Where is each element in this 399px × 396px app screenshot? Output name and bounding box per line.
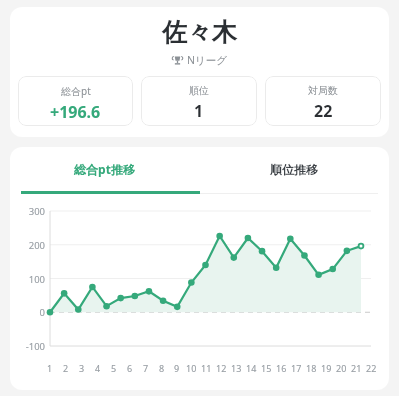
staticText: 対局数 bbox=[308, 84, 338, 97]
staticText: 8 bbox=[159, 362, 165, 374]
staticText: 11 bbox=[201, 362, 212, 374]
staticText: 22 bbox=[314, 100, 333, 122]
staticText: 6 bbox=[127, 362, 133, 374]
staticText: 9 bbox=[174, 362, 180, 374]
staticText: 18 bbox=[306, 362, 317, 374]
staticText: 4 bbox=[95, 362, 101, 374]
staticText: 1 bbox=[47, 362, 53, 374]
staticText: 7 bbox=[143, 362, 149, 374]
staticText: +196.6 bbox=[50, 101, 101, 123]
staticText: 300 bbox=[28, 205, 45, 218]
staticText: 2 bbox=[63, 362, 69, 374]
staticText: 10 bbox=[186, 362, 197, 374]
staticText: 1 bbox=[194, 100, 204, 122]
staticText: 5 bbox=[111, 362, 117, 374]
staticText: 0 bbox=[39, 306, 45, 319]
staticText: 12 bbox=[216, 362, 227, 374]
staticText: 3 bbox=[79, 362, 85, 374]
staticText: 13 bbox=[231, 362, 242, 374]
button[interactable]: 総合pt推移 bbox=[10, 147, 199, 191]
staticText: 14 bbox=[246, 362, 257, 374]
staticText: 21 bbox=[351, 362, 362, 374]
staticText: -100 bbox=[25, 340, 45, 353]
staticText: 200 bbox=[28, 239, 45, 252]
button[interactable]: 順位 bbox=[141, 76, 257, 126]
button[interactable]: 総合pt bbox=[18, 76, 133, 126]
staticText: 17 bbox=[291, 362, 302, 374]
button[interactable]: 対局数 bbox=[265, 76, 381, 126]
staticText: 総合pt推移 bbox=[74, 161, 135, 177]
staticText: Nリーグ bbox=[187, 53, 227, 67]
staticText: 順位 bbox=[189, 84, 209, 97]
other: League bbox=[172, 55, 183, 66]
staticText: 19 bbox=[321, 362, 332, 374]
staticText: 総合pt bbox=[61, 84, 91, 98]
staticText: 16 bbox=[276, 362, 287, 374]
staticText: 100 bbox=[28, 273, 45, 286]
staticText: 佐々木 bbox=[162, 17, 237, 48]
staticText: 15 bbox=[261, 362, 272, 374]
button[interactable]: 順位推移 bbox=[199, 147, 389, 191]
staticText: 20 bbox=[336, 362, 347, 374]
staticText: 順位推移 bbox=[270, 162, 318, 177]
staticText: 22 bbox=[366, 362, 377, 374]
